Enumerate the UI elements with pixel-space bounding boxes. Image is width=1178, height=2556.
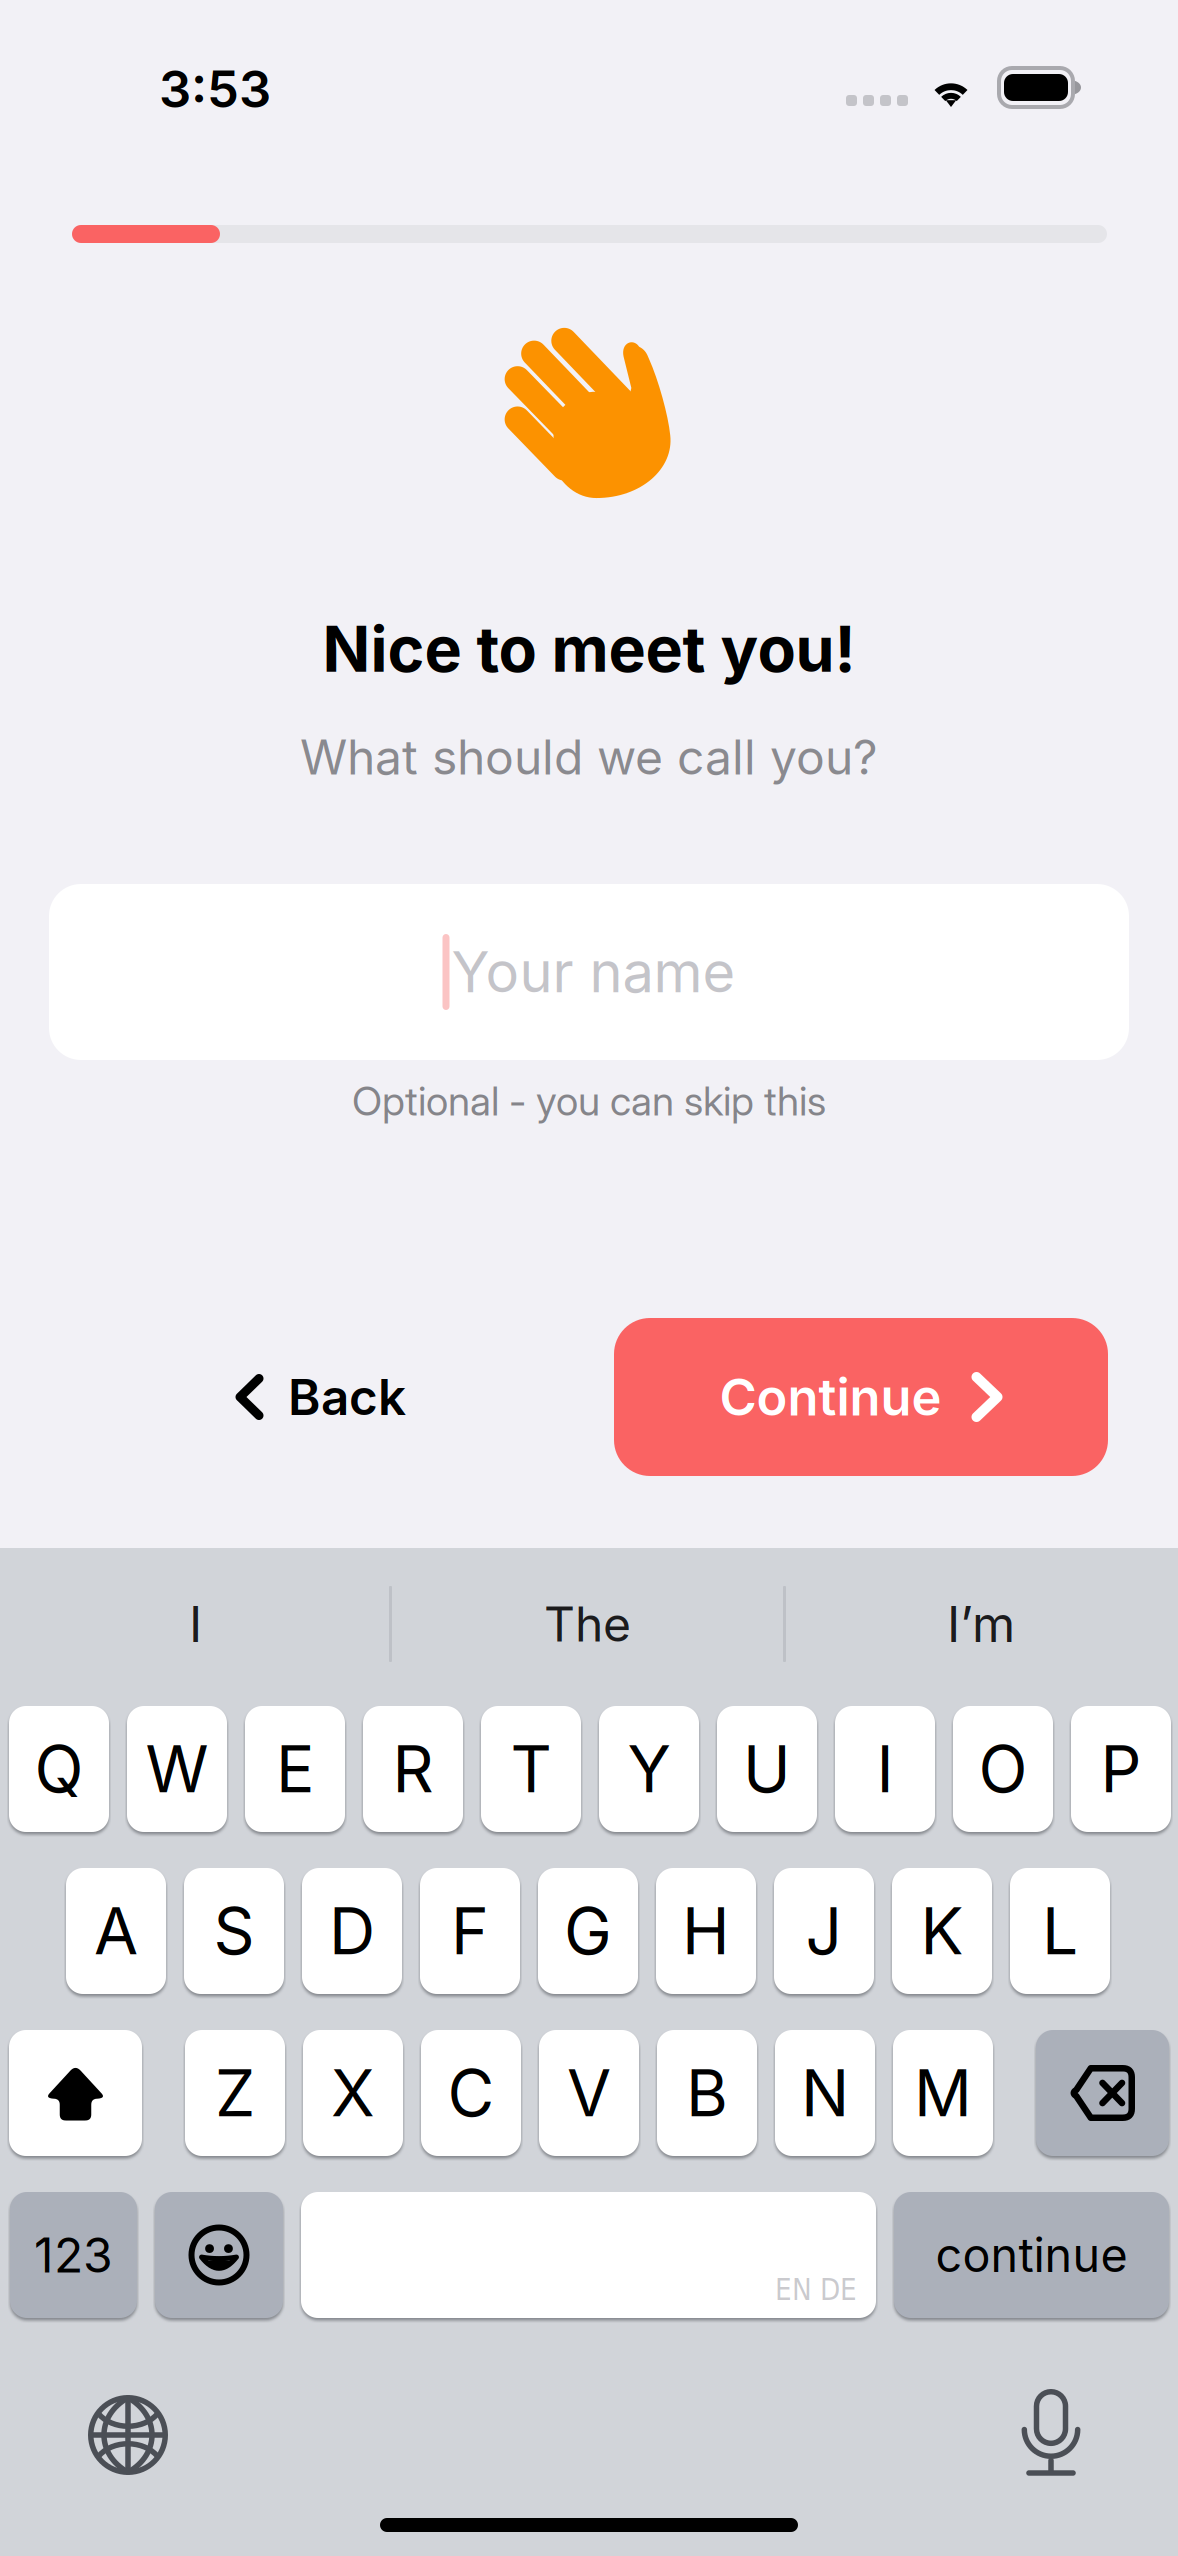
staticText: L	[1042, 1892, 1078, 1970]
button[interactable]: P	[1071, 1706, 1171, 1832]
staticText: M	[914, 2054, 972, 2132]
button[interactable]: I	[0, 1572, 391, 1676]
staticText: R	[392, 1730, 433, 1808]
staticText: Optional - you can skip this	[352, 1077, 826, 1125]
button[interactable]: M	[893, 2030, 993, 2156]
staticText: W	[145, 1730, 208, 1808]
button[interactable]: Next keyboard	[88, 2395, 168, 2475]
staticText: E	[276, 1730, 314, 1808]
button[interactable]: E	[245, 1706, 345, 1832]
staticText: X	[331, 2054, 375, 2132]
staticText: I’m	[947, 1594, 1015, 1654]
staticText: Your name	[451, 938, 735, 1006]
button[interactable]: S	[184, 1868, 284, 1994]
button[interactable]: Dictation	[1022, 2390, 1080, 2476]
button[interactable]: K	[892, 1868, 992, 1994]
button[interactable]: O	[953, 1706, 1053, 1832]
staticText: T	[510, 1730, 551, 1808]
staticText: F	[451, 1892, 489, 1970]
staticText: Back	[288, 1367, 406, 1427]
button[interactable]: Z	[185, 2030, 285, 2156]
button[interactable]: Back	[236, 1337, 466, 1457]
staticText: J	[805, 1892, 842, 1970]
button[interactable]: W	[127, 1706, 227, 1832]
staticText: D	[329, 1892, 375, 1970]
staticText: Continue	[719, 1366, 941, 1428]
staticText: P	[1100, 1730, 1141, 1808]
staticText: O	[978, 1730, 1027, 1808]
staticText: U	[743, 1730, 791, 1808]
staticText: The	[544, 1595, 631, 1653]
button[interactable]: D	[302, 1868, 402, 1994]
button[interactable]: 123	[10, 2192, 137, 2318]
button[interactable]: Continue	[614, 1318, 1108, 1476]
button[interactable]: continue	[894, 2192, 1169, 2318]
button[interactable]: V	[539, 2030, 639, 2156]
staticText: V	[567, 2054, 611, 2132]
button[interactable]: Delete	[1036, 2030, 1169, 2156]
button[interactable]: C	[421, 2030, 521, 2156]
staticText: S	[213, 1892, 254, 1970]
staticText: Q	[34, 1730, 83, 1808]
button[interactable]: A	[66, 1868, 166, 1994]
staticText: What should we call you?	[300, 728, 878, 786]
button[interactable]: J	[774, 1868, 874, 1994]
staticText: 123	[34, 2226, 113, 2284]
staticText: N	[801, 2054, 849, 2132]
staticText: G	[564, 1892, 612, 1970]
staticText: K	[920, 1892, 963, 1970]
button[interactable]: Emoji	[155, 2192, 283, 2318]
button[interactable]: Y	[599, 1706, 699, 1832]
staticText: I	[876, 1730, 893, 1808]
staticText: 3:53	[159, 58, 271, 120]
staticText: Nice to meet you!	[322, 611, 855, 687]
staticText: C	[447, 2054, 494, 2132]
button[interactable]: H	[656, 1868, 756, 1994]
button[interactable]: T	[481, 1706, 581, 1832]
staticText: Y	[627, 1730, 670, 1808]
button[interactable]: space	[301, 2192, 876, 2318]
staticText: B	[686, 2054, 728, 2132]
staticText: EN DE	[775, 2273, 857, 2307]
button[interactable]: G	[538, 1868, 638, 1994]
button[interactable]: L	[1010, 1868, 1110, 1994]
button[interactable]: Shift	[9, 2030, 142, 2156]
button[interactable]: The	[391, 1572, 784, 1676]
button[interactable]: N	[775, 2030, 875, 2156]
staticText: A	[94, 1892, 138, 1970]
staticText: Z	[215, 2054, 255, 2132]
staticText: continue	[935, 2227, 1127, 2283]
button[interactable]: R	[363, 1706, 463, 1832]
button[interactable]: B	[657, 2030, 757, 2156]
button[interactable]: U	[717, 1706, 817, 1832]
button[interactable]: F	[420, 1868, 520, 1994]
button[interactable]: Q	[9, 1706, 109, 1832]
button[interactable]: I’m	[784, 1572, 1178, 1676]
button[interactable]: X	[303, 2030, 403, 2156]
button[interactable]: I	[835, 1706, 935, 1832]
staticText: I	[189, 1594, 202, 1654]
staticText: H	[682, 1892, 730, 1970]
